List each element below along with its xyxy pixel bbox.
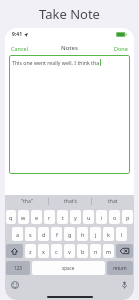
staticText: h <box>81 231 85 238</box>
staticText: i <box>101 214 103 221</box>
button[interactable]: l <box>116 227 127 241</box>
button[interactable]: z <box>25 244 36 258</box>
button[interactable]: k <box>103 227 114 241</box>
staticText: p <box>126 214 130 221</box>
staticText: q <box>9 214 13 221</box>
button[interactable]: v <box>64 244 75 258</box>
button[interactable]: g <box>64 227 75 241</box>
staticText: Done <box>114 45 128 52</box>
button[interactable]: p <box>122 210 133 224</box>
button[interactable]: x <box>38 244 49 258</box>
staticText: t <box>62 214 64 221</box>
staticText: a <box>16 231 20 238</box>
staticText: z <box>29 248 32 255</box>
button[interactable]: Backspace <box>116 244 133 258</box>
button[interactable]: that's <box>49 195 91 208</box>
staticText: Take Note <box>39 5 100 23</box>
button[interactable]: j <box>90 227 101 241</box>
button[interactable]: t <box>57 210 68 224</box>
staticText: that <box>108 198 118 205</box>
button[interactable]: b <box>77 244 88 258</box>
staticText: y <box>74 214 77 221</box>
button[interactable]: 123 <box>6 261 30 275</box>
button[interactable]: d <box>38 227 49 241</box>
button[interactable]: h <box>77 227 88 241</box>
button[interactable]: u <box>83 210 94 224</box>
staticText: c <box>55 248 58 255</box>
staticText: b <box>81 248 85 255</box>
button[interactable]: y <box>70 210 81 224</box>
staticText: v <box>68 248 71 255</box>
staticText: f <box>56 231 58 238</box>
button[interactable]: Emoji keyboard <box>10 280 20 290</box>
button[interactable]: i <box>96 210 107 224</box>
staticText: space <box>62 265 75 271</box>
staticText: s <box>29 231 32 238</box>
staticText: x <box>42 248 45 255</box>
button[interactable]: q <box>6 210 16 224</box>
button[interactable]: This one went really well, I think tha <box>9 55 130 174</box>
button[interactable]: "tha" <box>5 195 48 208</box>
button[interactable]: space <box>32 261 105 275</box>
staticText: u <box>87 214 91 221</box>
staticText: n <box>94 248 98 255</box>
button[interactable]: w <box>18 210 29 224</box>
staticText: o <box>113 214 117 221</box>
staticText: This one went really well, I think tha <box>12 59 100 66</box>
staticText: w <box>21 214 26 221</box>
staticText: "tha" <box>21 198 33 205</box>
button[interactable]: Cancel <box>5 43 35 54</box>
button[interactable]: Shift <box>6 244 23 258</box>
button[interactable]: f <box>51 227 62 241</box>
staticText: return <box>113 265 127 271</box>
button[interactable]: e <box>31 210 42 224</box>
button[interactable]: Dictation <box>119 280 129 290</box>
staticText: d <box>42 231 46 238</box>
staticText: m <box>106 248 112 255</box>
button[interactable]: return <box>107 261 133 275</box>
staticText: that's <box>64 198 77 205</box>
staticText: 9:41 <box>12 31 22 38</box>
staticText: l <box>121 231 123 238</box>
staticText: 123 <box>14 265 22 271</box>
button[interactable]: n <box>90 244 101 258</box>
button[interactable]: r <box>44 210 55 224</box>
staticText: r <box>48 214 51 221</box>
button[interactable]: that <box>92 195 134 208</box>
button[interactable]: c <box>51 244 62 258</box>
button[interactable]: o <box>109 210 120 224</box>
staticText: k <box>107 231 110 238</box>
button[interactable]: Done <box>108 43 134 54</box>
button[interactable]: m <box>103 244 114 258</box>
staticText: e <box>35 214 39 221</box>
staticText: Notes <box>61 44 78 52</box>
staticText: Cancel <box>11 45 29 52</box>
button[interactable]: s <box>25 227 36 241</box>
staticText: j <box>95 231 97 238</box>
staticText: g <box>68 231 72 238</box>
button[interactable]: a <box>12 227 23 241</box>
